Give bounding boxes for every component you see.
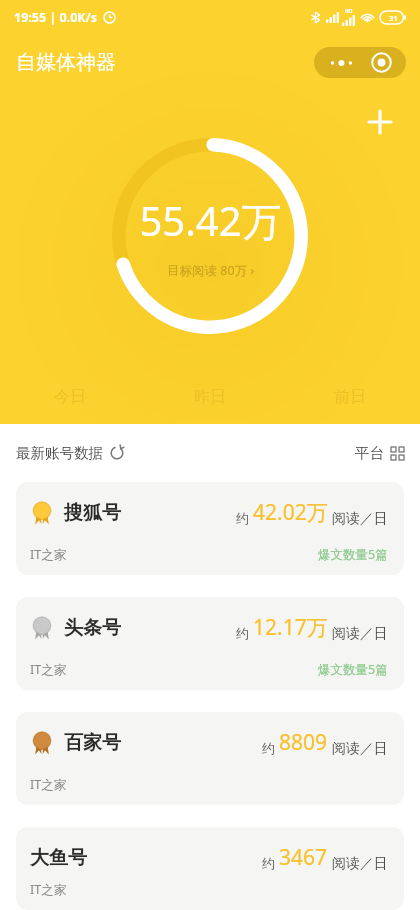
button[interactable]: Add account — [358, 100, 402, 144]
staticText: 55.42万 — [139, 193, 282, 248]
staticText: 最新账号数据 — [16, 444, 103, 462]
staticText: 约 — [262, 854, 279, 872]
button[interactable]: 搜狐号 — [16, 482, 404, 575]
button[interactable]: 大鱼号 — [16, 827, 404, 910]
staticText: 阅读／日 — [328, 853, 388, 872]
staticText: 42.02万 — [253, 498, 328, 527]
staticText: 搜狐号 — [64, 501, 121, 525]
button[interactable]: 55.42万 — [112, 138, 308, 334]
button[interactable]: Menu and account — [314, 47, 406, 78]
button[interactable]: 头条号 — [16, 597, 404, 690]
staticText: 头条号 — [64, 616, 121, 640]
staticText: 昨日 — [194, 387, 226, 407]
staticText: IT之家 — [30, 881, 67, 898]
button[interactable]: 最新账号数据 — [16, 444, 124, 462]
staticText: 约 — [236, 509, 253, 527]
button[interactable]: Platform filter — [355, 444, 404, 462]
button[interactable]: 百家号 — [16, 712, 404, 805]
staticText: 今日 — [54, 387, 86, 407]
staticText: HD — [345, 8, 353, 15]
staticText: 自媒体神器 — [16, 50, 116, 75]
staticText: 爆文数量5篇 — [318, 661, 388, 678]
staticText: 3467 — [279, 843, 328, 872]
staticText: 爆文数量5篇 — [318, 546, 388, 563]
staticText: 阅读／日 — [328, 738, 388, 757]
staticText: 前日 — [334, 387, 366, 407]
staticText: 百家号 — [64, 731, 121, 755]
staticText: 约 — [262, 739, 279, 757]
staticText: 阅读／日 — [328, 508, 388, 527]
staticText: 阅读／日 — [328, 623, 388, 642]
staticText: 12.17万 — [253, 613, 328, 642]
staticText: 19:55 | 0.0K/s — [14, 9, 98, 26]
staticText: 8809 — [279, 728, 328, 757]
staticText: 约 — [236, 624, 253, 642]
staticText: IT之家 — [30, 546, 67, 563]
staticText: 31 — [389, 13, 398, 23]
staticText: IT之家 — [30, 776, 67, 793]
staticText: 大鱼号 — [30, 846, 87, 870]
staticText: 平台 — [355, 444, 384, 462]
staticText: IT之家 — [30, 661, 67, 678]
staticText: 目标阅读 80万 › — [167, 262, 255, 279]
